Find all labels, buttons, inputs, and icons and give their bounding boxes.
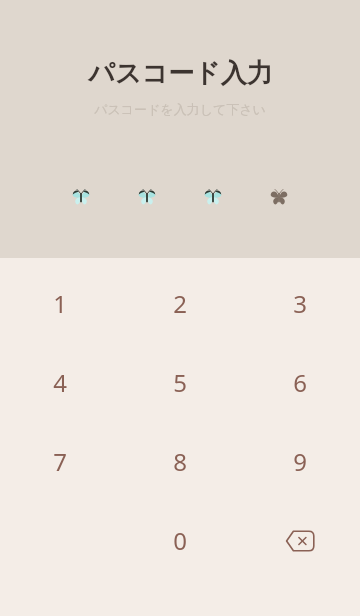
button[interactable]: 8 — [120, 422, 240, 501]
staticText: 2 — [173, 287, 187, 320]
staticText: パスコードを入力して下さい — [94, 101, 266, 117]
staticText: 6 — [293, 366, 307, 399]
button[interactable]: Delete — [240, 501, 360, 580]
staticText: 1 — [53, 287, 67, 320]
button[interactable]: 9 — [240, 422, 360, 501]
button[interactable]: 3 — [240, 264, 360, 343]
button[interactable]: 4 — [0, 343, 120, 422]
staticText: パスコード入力 — [88, 57, 273, 90]
button[interactable]: 1 — [0, 264, 120, 343]
staticText: 5 — [173, 366, 187, 399]
staticText: 0 — [173, 524, 187, 557]
staticText: 4 — [53, 366, 67, 399]
staticText: 9 — [293, 445, 307, 478]
button[interactable]: 7 — [0, 422, 120, 501]
button[interactable]: 0 — [120, 501, 240, 580]
staticText: 7 — [53, 445, 67, 478]
staticText: 8 — [173, 445, 187, 478]
button[interactable]: 6 — [240, 343, 360, 422]
staticText: 3 — [293, 287, 307, 320]
button[interactable]: 5 — [120, 343, 240, 422]
button[interactable]: 2 — [120, 264, 240, 343]
